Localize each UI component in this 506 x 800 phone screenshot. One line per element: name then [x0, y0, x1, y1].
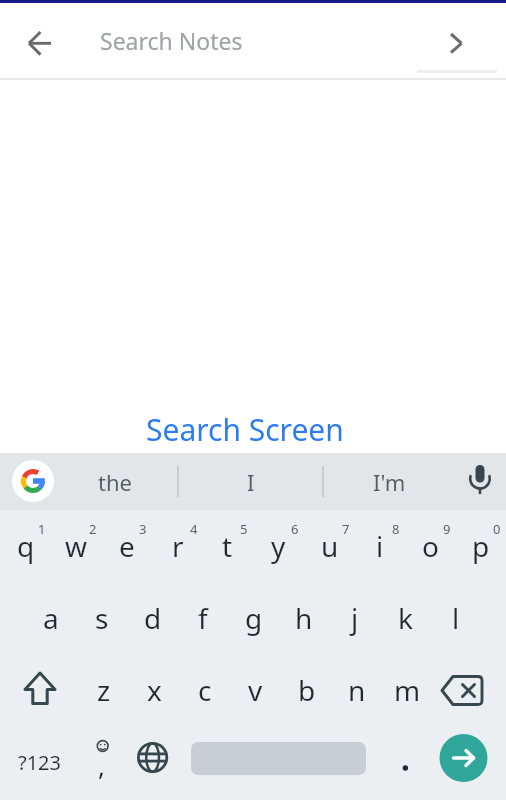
staticText: 1 [38, 520, 46, 538]
button[interactable]: Search Notes [90, 3, 410, 78]
staticText: n [348, 671, 366, 709]
staticText: b [298, 671, 316, 709]
button[interactable] [0, 654, 78, 726]
button[interactable]: g [228, 582, 279, 654]
button[interactable] [429, 654, 506, 726]
button[interactable]: r [152, 510, 203, 582]
staticText: f [198, 599, 208, 637]
button[interactable] [455, 453, 506, 510]
staticText: Search Notes [100, 25, 243, 56]
staticText: c [198, 671, 212, 709]
staticText: 4 [190, 520, 198, 538]
staticText: , [98, 748, 105, 783]
button[interactable]: l [430, 582, 481, 654]
staticText: x [147, 671, 162, 709]
button[interactable]: o [405, 510, 456, 582]
staticText: l [452, 599, 460, 637]
staticText: d [144, 599, 162, 637]
button[interactable] [128, 726, 178, 798]
staticText: 7 [342, 520, 350, 538]
staticText: 5 [240, 520, 248, 538]
staticText: q [17, 527, 35, 565]
button[interactable]: b [281, 654, 332, 726]
staticText: o [422, 527, 439, 565]
staticText: the [98, 467, 132, 497]
button[interactable]: u [304, 510, 355, 582]
staticText: r [172, 527, 184, 565]
staticText: ?123 [18, 749, 61, 776]
button[interactable]: y [253, 510, 304, 582]
staticText: 9 [443, 520, 451, 538]
button[interactable]: k [380, 582, 431, 654]
staticText: t [222, 527, 233, 565]
button[interactable]: z [78, 654, 129, 726]
staticText: k [398, 599, 413, 637]
button[interactable]: a [25, 582, 76, 654]
staticText: a [43, 599, 59, 637]
button[interactable]: x [129, 654, 180, 726]
staticText: 6 [291, 520, 299, 538]
button[interactable]: t [202, 510, 253, 582]
button[interactable] [178, 726, 380, 798]
button[interactable] [380, 726, 430, 798]
staticText: u [321, 527, 339, 565]
button[interactable] [22, 25, 58, 61]
button[interactable]: j [329, 582, 380, 654]
button[interactable]: , [78, 726, 128, 798]
button[interactable]: d [127, 582, 178, 654]
button[interactable]: w [51, 510, 102, 582]
staticText: i [376, 527, 384, 565]
staticText: Search Screen [146, 409, 344, 450]
button[interactable]: p [455, 510, 506, 582]
staticText: p [472, 527, 490, 565]
staticText: 0 [493, 520, 501, 538]
staticText: e [119, 527, 135, 565]
staticText: g [245, 599, 263, 637]
button[interactable] [438, 23, 476, 61]
button[interactable]: the [52, 453, 178, 510]
button[interactable]: i [354, 510, 405, 582]
staticText: m [394, 671, 421, 709]
staticText: z [97, 671, 111, 709]
staticText: 2 [89, 520, 97, 538]
button[interactable]: h [278, 582, 329, 654]
button[interactable]: n [331, 654, 382, 726]
staticText: v [248, 671, 263, 709]
staticText: y [271, 527, 286, 565]
button[interactable] [430, 726, 506, 798]
button[interactable]: m [382, 654, 433, 726]
staticText: j [351, 599, 359, 637]
staticText: s [95, 599, 109, 637]
button[interactable]: c [179, 654, 230, 726]
button[interactable]: I [178, 453, 323, 510]
button[interactable]: ?123 [0, 726, 78, 798]
staticText: h [295, 599, 313, 637]
staticText: I [247, 467, 255, 497]
staticText: I'm [373, 467, 406, 497]
button[interactable]: q [0, 510, 51, 582]
button[interactable]: e [101, 510, 152, 582]
staticText: 8 [392, 520, 400, 538]
button[interactable]: s [76, 582, 127, 654]
button[interactable] [12, 460, 54, 502]
staticText: w [65, 527, 88, 565]
button[interactable]: f [177, 582, 228, 654]
button[interactable]: v [230, 654, 281, 726]
staticText: 3 [139, 520, 147, 538]
button[interactable]: I'm [323, 453, 455, 510]
